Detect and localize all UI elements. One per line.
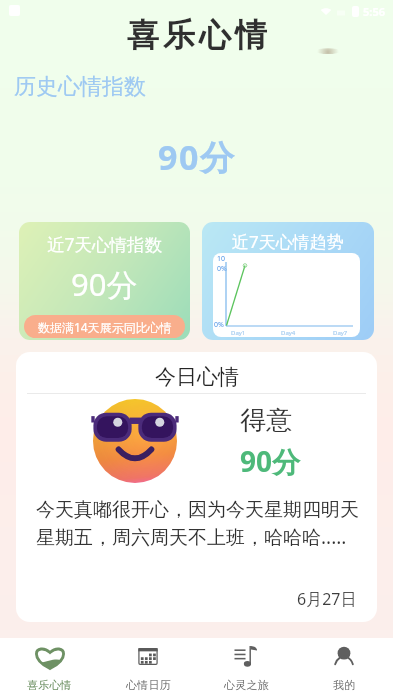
staticText: 90分 [158,134,236,180]
button[interactable]: 今日心情 [16,352,377,622]
staticText: 数据满14天展示同比心情 [38,319,172,335]
staticText: 近7天心情趋势 [232,230,344,253]
staticText: 历史心情指数 [14,73,146,101]
button[interactable]: 近7天心情趋势 [202,222,374,340]
button[interactable]: 近7天心情指数 [19,222,190,340]
staticText: 6月27日 [297,588,357,610]
staticText: 10 [217,254,226,264]
staticText: 0% [217,264,227,274]
staticText: 0% [214,320,224,330]
staticText: Day1 [231,329,246,337]
staticText: 心灵之旅 [224,678,269,692]
button[interactable]: 喜乐心情 [0,638,99,700]
button[interactable]: 我的 [295,638,393,700]
staticText: 喜乐心情 [27,678,72,692]
staticText: Day7 [333,329,348,337]
button[interactable]: 心情日历 [99,638,197,700]
staticText: 得意 [240,404,292,437]
staticText: 我的 [333,678,356,692]
staticText: 喜乐心情 [125,15,269,55]
staticText: 近7天心情指数 [47,232,163,256]
staticText: 心情日历 [126,678,171,692]
button[interactable]: 心灵之旅 [197,638,295,700]
staticText: Day4 [281,329,296,337]
staticText: 今天真嘟很开心，因为今天星期四明天星期五，周六周天不上班，哈哈哈..... [36,498,361,550]
staticText: 今日心情 [155,364,239,390]
staticText: 90分 [240,442,301,480]
staticText: 90分 [71,263,138,305]
staticText: 5:56 [363,4,385,19]
